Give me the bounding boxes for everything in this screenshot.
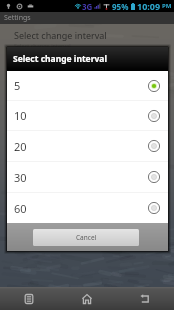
- staticText: 10:09: [137, 0, 161, 12]
- staticText: Select change interval: [13, 53, 107, 65]
- button[interactable]: Back: [116, 287, 174, 310]
- staticText: Select change interval: [14, 29, 107, 41]
- button[interactable]: Menu: [0, 287, 58, 310]
- staticText: 10: [14, 108, 27, 123]
- button[interactable]: 60: [7, 193, 168, 223]
- button[interactable]: Home: [58, 287, 116, 310]
- staticText: 30: [14, 170, 27, 185]
- staticText: 5: [14, 78, 21, 93]
- button[interactable]: 10: [7, 101, 168, 130]
- button[interactable]: Cancel: [33, 229, 139, 246]
- staticText: 95%: [112, 1, 129, 12]
- staticText: 60: [14, 201, 27, 216]
- button[interactable]: 5: [7, 71, 168, 100]
- staticText: Select change interval: [14, 42, 71, 49]
- staticText: Settings: [4, 13, 31, 23]
- staticText: 20: [14, 139, 27, 154]
- staticText: 3G: [82, 1, 93, 12]
- button[interactable]: 20: [7, 131, 168, 161]
- button[interactable]: 30: [7, 162, 168, 192]
- staticText: Cancel: [76, 233, 97, 242]
- staticText: PM: [162, 2, 172, 10]
